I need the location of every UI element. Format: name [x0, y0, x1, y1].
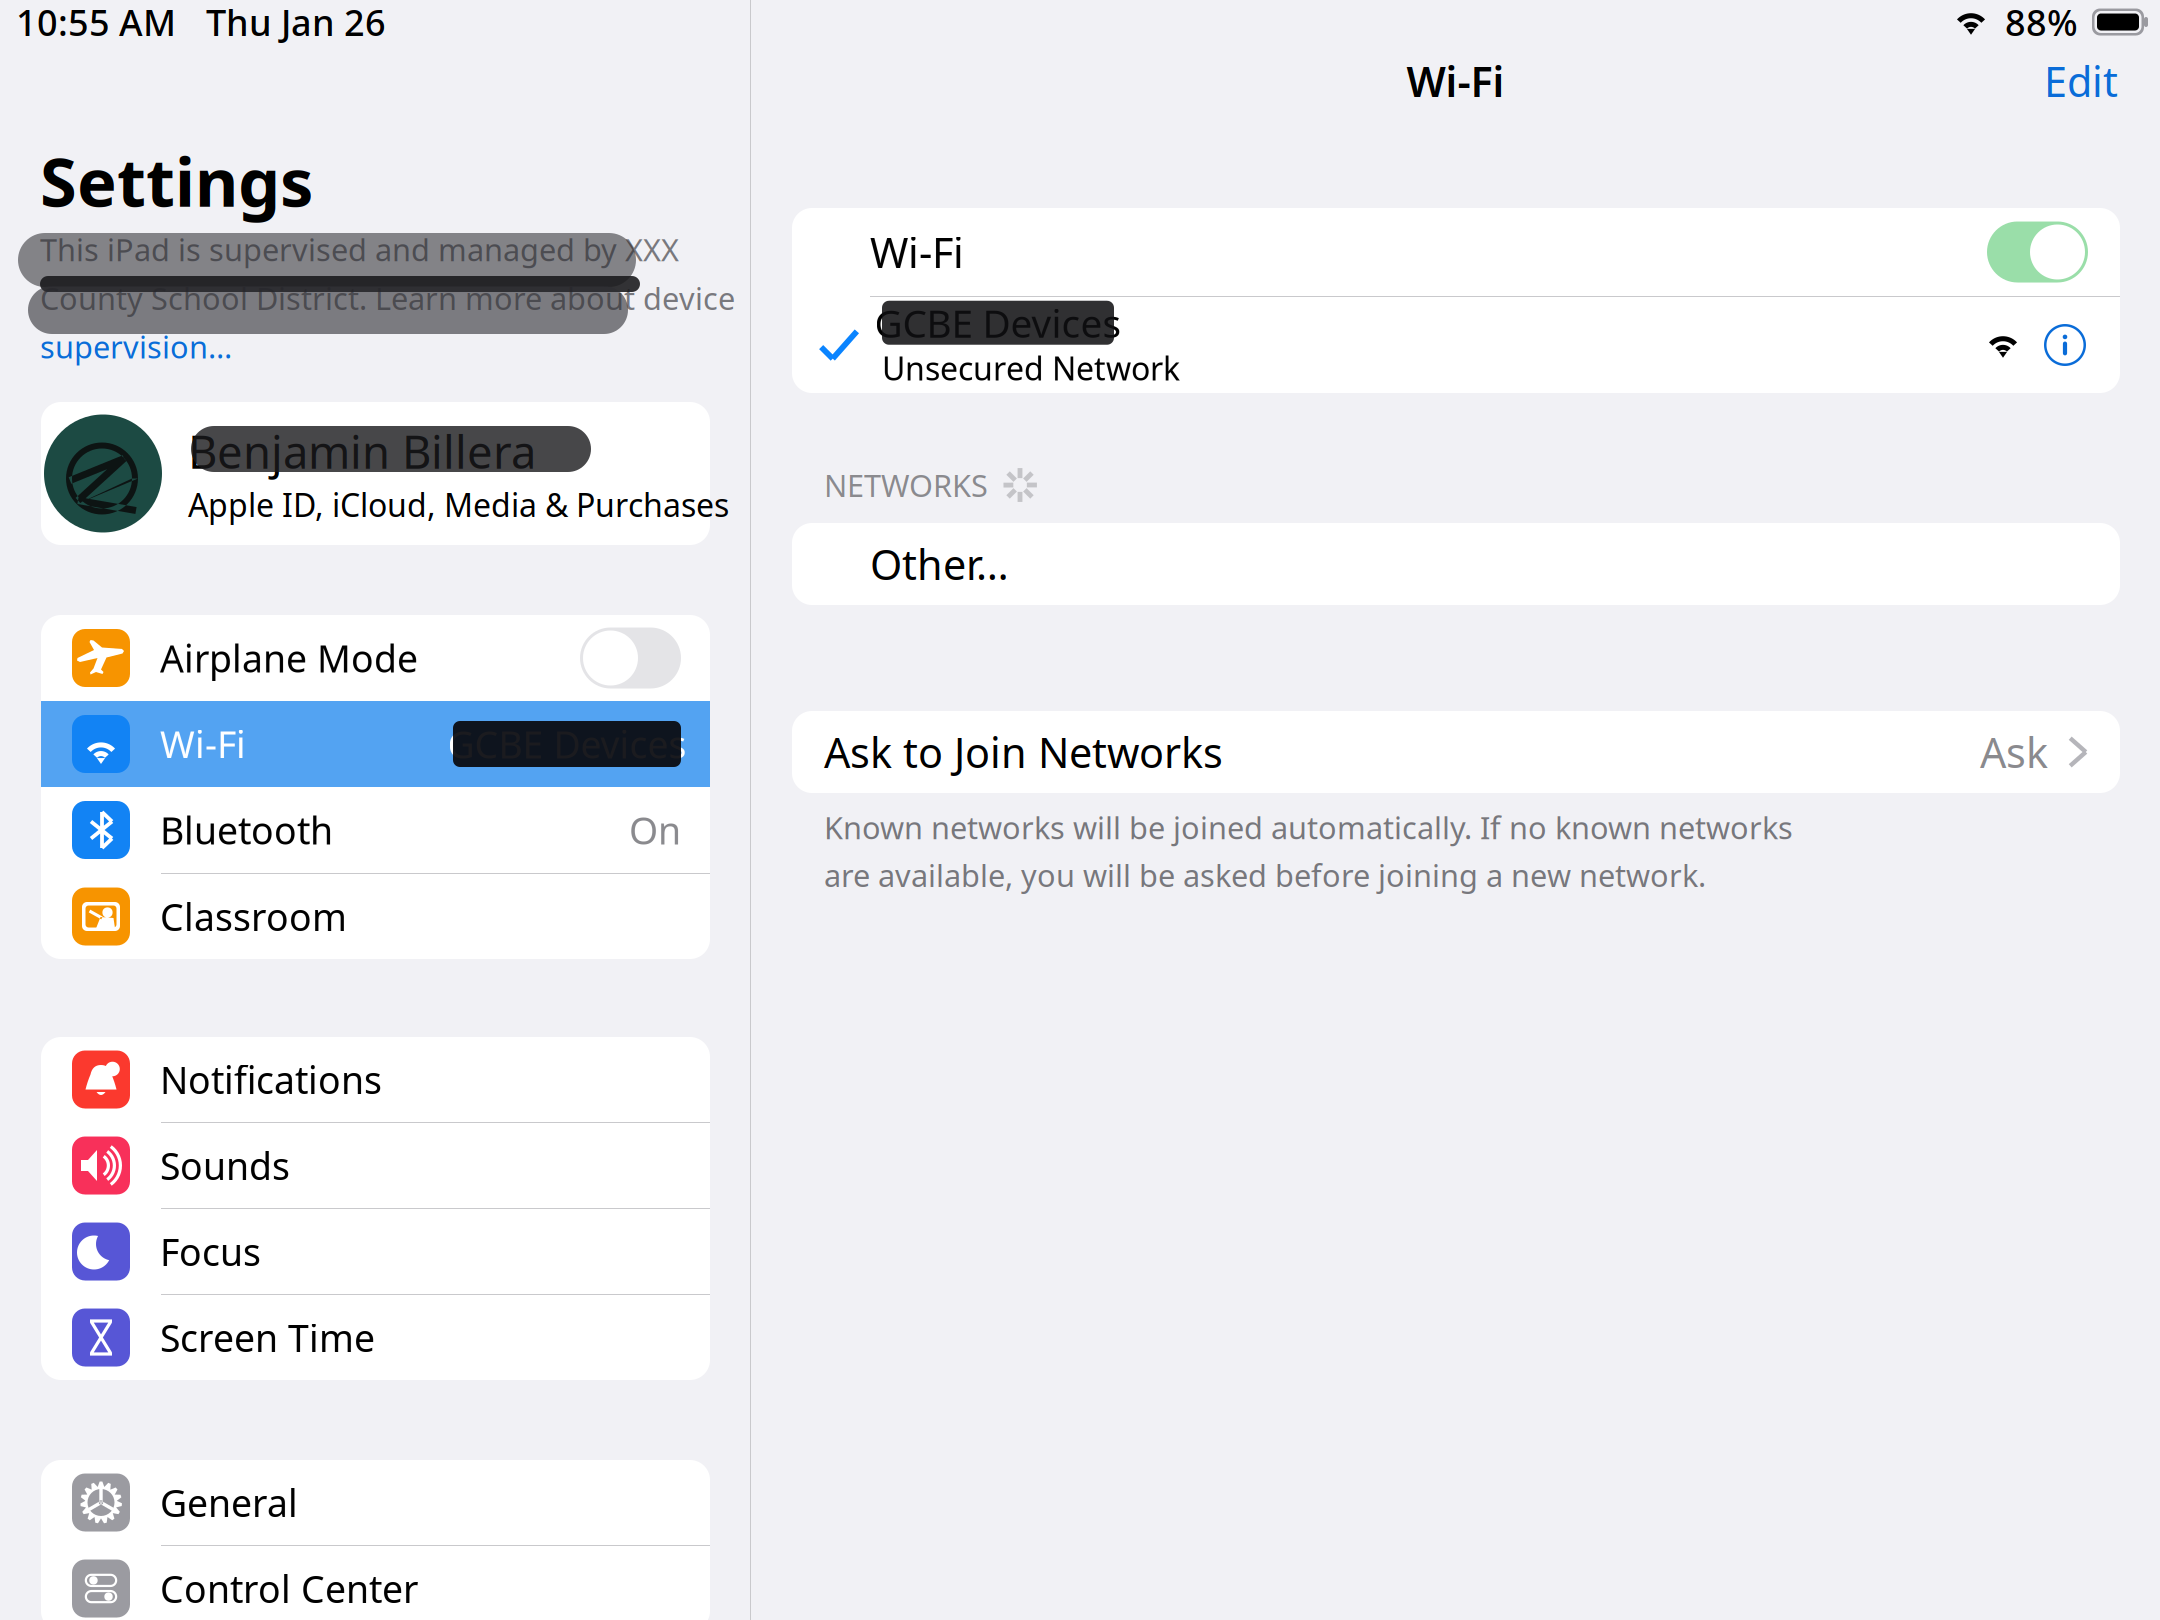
button[interactable]: Classroom [41, 874, 710, 959]
button[interactable]: Notifications [41, 1037, 710, 1122]
staticText: Benjamin Billera [188, 421, 536, 481]
staticText: Control Center [160, 1564, 418, 1613]
staticText: Wi-Fi [160, 719, 246, 769]
staticText: Ask [1980, 725, 2048, 779]
staticText: Known networks will be joined automatica… [824, 807, 1793, 848]
staticText: GCBE Devices [447, 719, 686, 769]
staticText: Airplane Mode [160, 633, 418, 683]
staticText: 10:55 AM [16, 0, 176, 46]
staticText: Unsecured Network [882, 347, 1180, 389]
staticText: Edit [2044, 54, 2118, 108]
button[interactable]: supervision… [40, 326, 232, 367]
staticText: Sounds [160, 1141, 290, 1190]
button[interactable]: GCBE Devices [792, 297, 2120, 393]
staticText: Wi-Fi [870, 225, 964, 279]
button[interactable]: Control Center [41, 1546, 710, 1620]
button[interactable]: General [41, 1460, 710, 1545]
staticText: GCBE Devices [874, 297, 1121, 348]
staticText: 88% [2005, 0, 2078, 46]
staticText: County School District. Learn more about… [40, 278, 735, 318]
button[interactable]: Bluetooth [41, 787, 710, 873]
button[interactable]: Sounds [41, 1123, 710, 1208]
staticText: Bluetooth [160, 805, 333, 855]
staticText: Apple ID, iCloud, Media & Purchases [188, 483, 729, 526]
staticText: Ask to Join Networks [824, 725, 1223, 779]
button[interactable]: Other… [792, 523, 2120, 605]
button[interactable]: Wi-Fi [41, 701, 710, 787]
staticText: are available, you will be asked before … [824, 855, 1706, 895]
staticText: NETWORKS [824, 465, 988, 505]
button[interactable]: Edit [2030, 40, 2132, 122]
staticText: Classroom [160, 892, 347, 941]
staticText: supervision… [40, 326, 232, 367]
staticText: This iPad is supervised and managed by X… [40, 229, 679, 270]
button[interactable]: Ask to Join Networks [792, 711, 2120, 793]
button[interactable]: Benjamin Billera [41, 402, 710, 545]
button[interactable]: Airplane Mode [41, 615, 710, 701]
staticText: Screen Time [160, 1313, 375, 1362]
staticText: Other… [870, 537, 1009, 591]
staticText: Notifications [160, 1055, 382, 1104]
button[interactable]: Screen Time [41, 1295, 710, 1380]
staticText: Wi-Fi [1406, 54, 1504, 108]
button[interactable]: Focus [41, 1209, 710, 1294]
staticText: On [629, 805, 681, 855]
button[interactable]: Wi-Fi [792, 208, 2120, 296]
staticText: Thu Jan 26 [206, 0, 386, 46]
staticText: Settings [40, 137, 313, 225]
button[interactable]: Network information [2035, 315, 2095, 375]
staticText: Focus [160, 1227, 261, 1276]
staticText: General [160, 1478, 298, 1527]
